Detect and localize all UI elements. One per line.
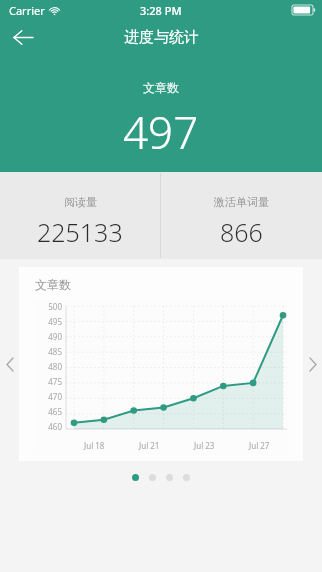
button[interactable]: Page 2 xyxy=(149,474,156,481)
staticText: Carrier xyxy=(9,3,45,18)
staticText: 495 xyxy=(48,316,62,327)
staticText: Jul 27 xyxy=(249,440,270,451)
staticText: 866 xyxy=(220,215,263,249)
staticText: 490 xyxy=(48,331,62,342)
staticText: 激活单词量 xyxy=(214,195,269,209)
button[interactable]: Previous chart xyxy=(0,344,19,384)
button[interactable]: Page 3 xyxy=(166,474,173,481)
staticText: Jul 23 xyxy=(194,440,215,451)
staticText: 进度与统计 xyxy=(124,28,199,47)
staticText: 485 xyxy=(48,346,62,357)
button[interactable]: 阅读量 xyxy=(0,172,160,259)
staticText: Jul 21 xyxy=(139,440,160,451)
button[interactable]: Back xyxy=(0,20,46,55)
button[interactable]: Page 1 xyxy=(132,474,139,481)
staticText: 3:28 PM xyxy=(140,3,182,18)
button[interactable]: Page 4 xyxy=(183,474,190,481)
staticText: 文章数 xyxy=(143,80,179,95)
button[interactable]: 激活单词量 xyxy=(161,172,322,259)
staticText: 470 xyxy=(48,391,62,402)
staticText: 500 xyxy=(48,301,62,312)
staticText: 文章数 xyxy=(35,277,71,292)
staticText: 460 xyxy=(48,421,62,431)
staticText: 475 xyxy=(48,376,62,387)
staticText: 497 xyxy=(123,102,199,162)
button[interactable]: 文章数 xyxy=(19,267,303,461)
staticText: 阅读量 xyxy=(64,195,97,209)
staticText: 225133 xyxy=(37,215,123,249)
staticText: 480 xyxy=(48,361,62,372)
staticText: 465 xyxy=(48,406,62,417)
button[interactable]: Next chart xyxy=(303,344,322,384)
staticText: Jul 18 xyxy=(84,440,105,451)
